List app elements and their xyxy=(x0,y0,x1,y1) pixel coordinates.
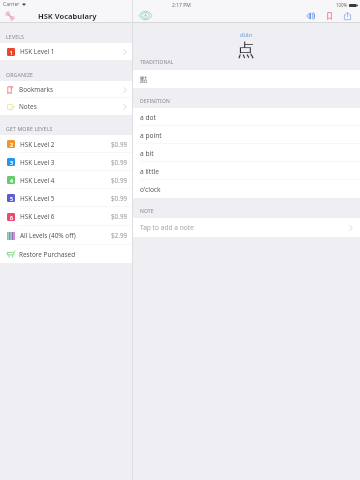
staticText: a point xyxy=(140,131,162,140)
staticText: LEVELS xyxy=(6,33,25,40)
staticText: NOTE xyxy=(140,208,154,215)
staticText: 1 xyxy=(10,49,13,56)
staticText: Restore Purchased xyxy=(19,250,76,259)
staticText: 黠 xyxy=(140,75,148,84)
staticText: Tap to add a note xyxy=(140,223,194,232)
staticText: diǎn xyxy=(240,31,253,39)
button[interactable]: 6 xyxy=(0,207,132,226)
button[interactable]: 4 xyxy=(0,171,132,189)
staticText: $0.99 xyxy=(111,176,128,185)
other: Share xyxy=(342,12,353,20)
button[interactable]: Bookmarks xyxy=(0,81,132,98)
staticText: HSK Level 2 xyxy=(20,140,55,149)
staticText: 4 xyxy=(10,177,13,184)
staticText: HSK Level 6 xyxy=(20,212,55,221)
staticText: 5 xyxy=(10,195,13,202)
button[interactable]: Notes xyxy=(0,98,132,115)
button[interactable]: 3 xyxy=(0,153,132,171)
staticText: 100% xyxy=(336,2,348,8)
staticText: 点 xyxy=(237,39,255,61)
staticText: 2 xyxy=(10,141,13,148)
staticText: o'clock xyxy=(140,185,161,194)
staticText: Notes xyxy=(19,102,37,111)
staticText: ORGANIZE xyxy=(6,71,34,78)
staticText: a dot xyxy=(140,113,156,122)
button[interactable]: a point xyxy=(133,126,360,144)
staticText: All Levels (40% off) xyxy=(20,231,76,240)
button[interactable]: 2 xyxy=(0,135,132,153)
staticText: 2:17 PM xyxy=(172,2,191,9)
staticText: $2.99 xyxy=(111,231,128,240)
staticText: $0.99 xyxy=(111,212,128,221)
staticText: HSK Level 1 xyxy=(20,47,55,56)
button[interactable]: a dot xyxy=(133,108,360,126)
button[interactable]: a little xyxy=(133,162,360,180)
other: Reveal answer xyxy=(139,11,152,20)
staticText: $0.99 xyxy=(111,140,128,149)
staticText: GET MORE LEVELS xyxy=(6,125,53,132)
staticText: HSK Level 3 xyxy=(20,158,55,167)
button[interactable]: 5 xyxy=(0,189,132,207)
staticText: Bookmarks xyxy=(19,85,53,94)
staticText: HSK Vocabulary xyxy=(38,11,97,21)
staticText: DEFINITION xyxy=(140,98,170,105)
button[interactable]: o'clock xyxy=(133,180,360,198)
button[interactable]: Restore Purchased xyxy=(0,245,132,263)
other: Bookmark xyxy=(324,12,335,20)
staticText: 6 xyxy=(10,214,13,221)
staticText: TRADITIONAL xyxy=(140,59,174,66)
staticText: 3 xyxy=(10,159,13,166)
button[interactable]: All Levels (40% off) xyxy=(0,226,132,245)
staticText: Carrier xyxy=(3,1,20,8)
other: Practice xyxy=(4,10,16,22)
button[interactable]: 1 xyxy=(0,43,132,60)
staticText: HSK Level 5 xyxy=(20,194,55,203)
other: Play pronunciation xyxy=(306,12,317,20)
button[interactable]: Tap to add a note xyxy=(133,218,360,237)
button[interactable]: a bit xyxy=(133,144,360,162)
staticText: a little xyxy=(140,167,159,176)
staticText: a bit xyxy=(140,149,154,158)
staticText: HSK Level 4 xyxy=(20,176,55,185)
staticText: $0.99 xyxy=(111,194,128,203)
staticText: $0.99 xyxy=(111,158,128,167)
